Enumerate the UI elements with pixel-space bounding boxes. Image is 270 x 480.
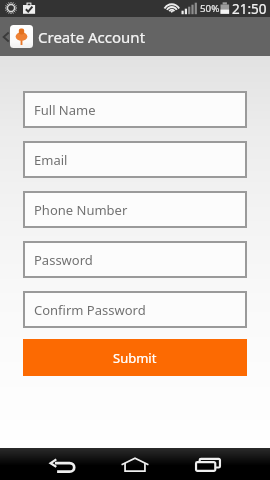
staticText: Confirm Password — [34, 301, 146, 319]
button[interactable]: Home — [115, 448, 155, 480]
button[interactable]: Back — [42, 448, 82, 480]
staticText: Password — [34, 251, 93, 269]
button[interactable]: Recent apps — [188, 448, 228, 480]
button[interactable]: Password — [23, 241, 247, 278]
staticText: Submit — [113, 349, 157, 367]
staticText: Create Account — [38, 27, 146, 47]
staticText: Email — [34, 151, 68, 169]
staticText: Phone Number — [34, 201, 128, 219]
staticText: 50% — [200, 2, 220, 15]
staticText: 21:50 — [232, 0, 267, 17]
button[interactable]: Confirm Password — [23, 291, 247, 328]
button[interactable]: Email — [23, 141, 247, 178]
button[interactable]: Navigate up — [0, 25, 33, 48]
button[interactable]: Full Name — [23, 91, 247, 128]
button[interactable]: Phone Number — [23, 191, 247, 228]
staticText: Full Name — [34, 101, 96, 119]
button[interactable]: Submit — [23, 339, 247, 376]
